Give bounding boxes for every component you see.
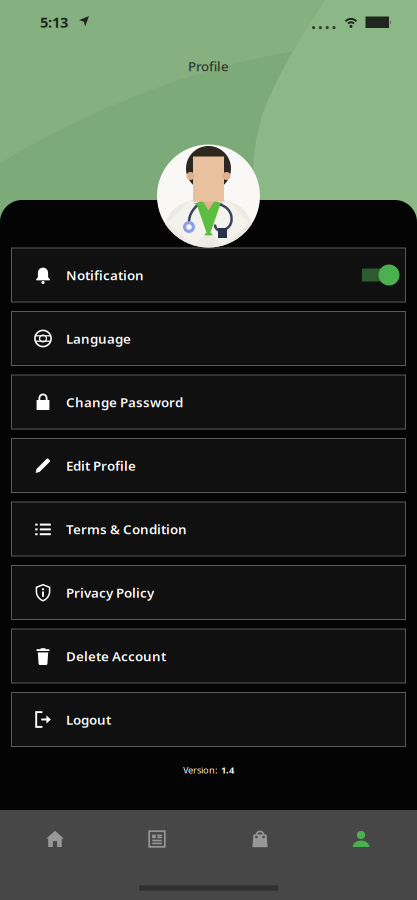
staticText: Language xyxy=(66,330,131,347)
staticText: 1.4 xyxy=(221,764,234,776)
staticText: Change Password xyxy=(66,393,183,411)
staticText: Delete Account xyxy=(66,647,166,665)
staticText: 5:13 xyxy=(40,12,68,32)
staticText: Terms & Condition xyxy=(66,520,187,538)
staticText: Notification xyxy=(66,266,144,284)
staticText: Profile xyxy=(188,57,229,75)
staticText: Edit Profile xyxy=(66,457,136,474)
staticText: Version: xyxy=(183,764,218,776)
staticText: Privacy Policy xyxy=(66,584,154,601)
staticText: Logout xyxy=(66,711,111,728)
